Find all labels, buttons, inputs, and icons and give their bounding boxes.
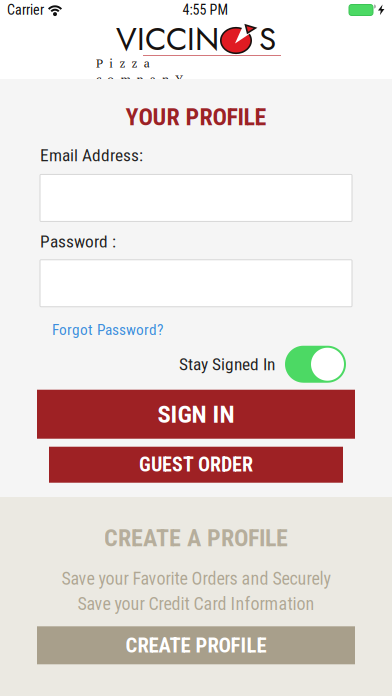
button[interactable]: CREATE PROFILE bbox=[37, 626, 355, 664]
staticText: 4:55 PM bbox=[182, 2, 228, 18]
button[interactable]: Forgot Password? bbox=[40, 307, 352, 339]
staticText: S bbox=[259, 16, 276, 62]
staticText: Password : bbox=[40, 231, 116, 252]
button[interactable]: SIGN IN bbox=[37, 390, 355, 439]
staticText: CREATE A PROFILE bbox=[104, 524, 288, 552]
staticText: Save your Favorite Orders and Securely bbox=[61, 568, 330, 589]
staticText: Pizza companY bbox=[96, 55, 252, 71]
staticText: Save your Credit Card Information bbox=[77, 593, 314, 614]
button[interactable]: Stay Signed In bbox=[285, 346, 346, 383]
staticText: VICCIN bbox=[116, 16, 219, 62]
staticText: Stay Signed In bbox=[179, 354, 275, 374]
button[interactable]: GUEST ORDER bbox=[49, 447, 343, 483]
staticText: Forgot Password? bbox=[52, 321, 163, 339]
staticText: SIGN IN bbox=[157, 400, 234, 429]
staticText: GUEST ORDER bbox=[139, 453, 253, 476]
staticText: CREATE PROFILE bbox=[125, 633, 266, 657]
staticText: Carrier bbox=[7, 2, 44, 18]
staticText: YOUR PROFILE bbox=[125, 103, 266, 131]
staticText: Email Address: bbox=[40, 145, 143, 165]
